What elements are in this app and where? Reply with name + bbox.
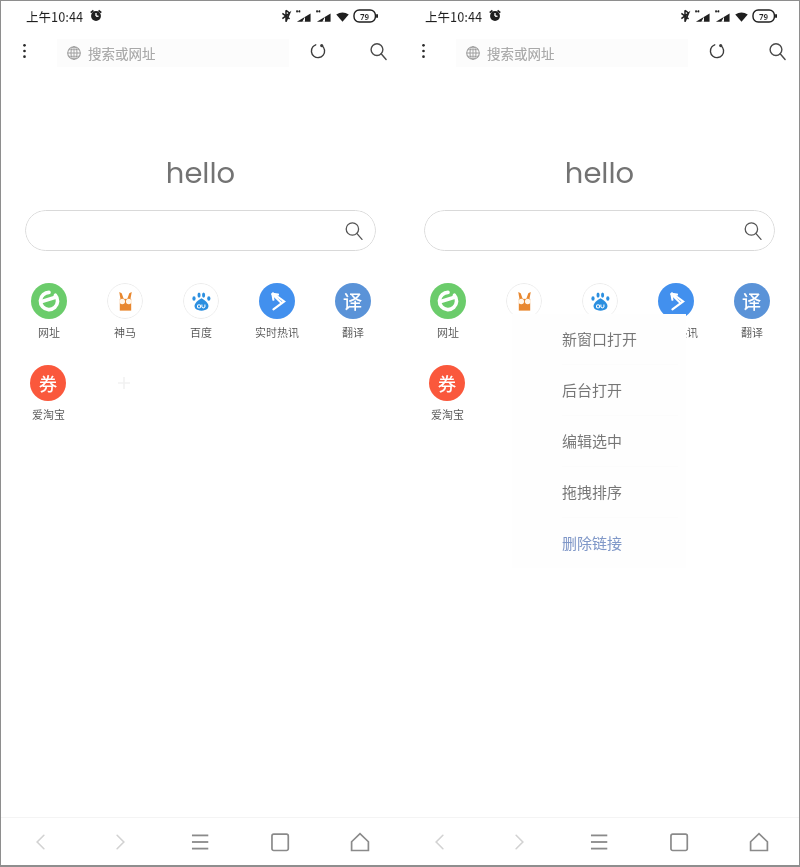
- staticText: hello: [400, 153, 799, 194]
- button[interactable]: 实时热讯: [638, 283, 714, 340]
- button[interactable]: 网址: [409, 283, 486, 340]
- button[interactable]: 编辑选中: [512, 416, 686, 466]
- button[interactable]: 券: [10, 365, 86, 422]
- button[interactable]: 百度: [163, 283, 239, 340]
- button[interactable]: Home: [719, 818, 799, 865]
- button[interactable]: Tabs: [639, 818, 719, 865]
- button[interactable]: 译: [714, 283, 790, 340]
- staticText: 翻译: [741, 324, 763, 340]
- staticText: 百度: [589, 324, 611, 340]
- staticText: 爱淘宝: [431, 406, 464, 422]
- button[interactable]: Menu: [559, 818, 639, 865]
- staticText: 79: [759, 11, 769, 22]
- staticText: 译: [742, 287, 762, 315]
- button[interactable]: Forward: [479, 818, 559, 865]
- button[interactable]: Forward: [80, 818, 160, 865]
- staticText: hello: [1, 153, 400, 194]
- button[interactable]: 券: [409, 365, 485, 422]
- button[interactable]: Search: [356, 31, 400, 71]
- button[interactable]: 新窗口打开: [512, 314, 686, 364]
- button[interactable]: 神马: [87, 283, 163, 340]
- button[interactable]: 百度: [562, 283, 638, 340]
- staticText: 上午10:44: [425, 7, 483, 25]
- staticText: 百度: [190, 324, 212, 340]
- staticText: 新窗口打开: [562, 328, 638, 350]
- staticText: 译: [343, 287, 363, 315]
- staticText: 券: [438, 370, 456, 396]
- staticText: 实时热讯: [255, 324, 299, 340]
- button[interactable]: Home: [320, 818, 400, 865]
- button[interactable]: More options: [400, 31, 446, 71]
- button[interactable]: 搜索或网址: [57, 39, 289, 67]
- button[interactable]: Refresh: [697, 31, 737, 71]
- button[interactable]: 译: [315, 283, 391, 340]
- button[interactable]: 删除链接: [512, 518, 686, 568]
- staticText: 删除链接: [562, 532, 623, 554]
- staticText: 网址: [38, 324, 60, 340]
- staticText: 翻译: [342, 324, 364, 340]
- button[interactable]: 网址: [10, 283, 87, 340]
- button[interactable]: 拖拽排序: [512, 467, 686, 517]
- staticText: 编辑选中: [562, 430, 623, 452]
- staticText: 搜索或网址: [487, 43, 555, 63]
- button[interactable]: 神马: [486, 283, 562, 340]
- staticText: 79: [360, 11, 370, 22]
- staticText: 拖拽排序: [562, 481, 623, 503]
- staticText: 实时热讯: [654, 324, 698, 340]
- staticText: 网址: [437, 324, 459, 340]
- button[interactable]: Menu: [160, 818, 240, 865]
- button[interactable]: Tabs: [240, 818, 320, 865]
- staticText: 后台打开: [562, 379, 623, 401]
- staticText: 搜索或网址: [88, 43, 156, 63]
- button[interactable]: Refresh: [298, 31, 338, 71]
- button[interactable]: Search: [424, 210, 775, 251]
- staticText: 上午10:44: [26, 7, 84, 25]
- button[interactable]: More options: [1, 31, 47, 71]
- staticText: 券: [39, 370, 57, 396]
- button[interactable]: 搜索或网址: [456, 39, 688, 67]
- button[interactable]: Search: [25, 210, 376, 251]
- button[interactable]: 后台打开: [512, 365, 686, 415]
- button[interactable]: Back: [400, 818, 479, 865]
- button[interactable]: Search: [755, 31, 799, 71]
- button[interactable]: Back: [1, 818, 80, 865]
- staticText: 神马: [114, 324, 136, 340]
- button[interactable]: 实时热讯: [239, 283, 315, 340]
- staticText: 爱淘宝: [32, 406, 65, 422]
